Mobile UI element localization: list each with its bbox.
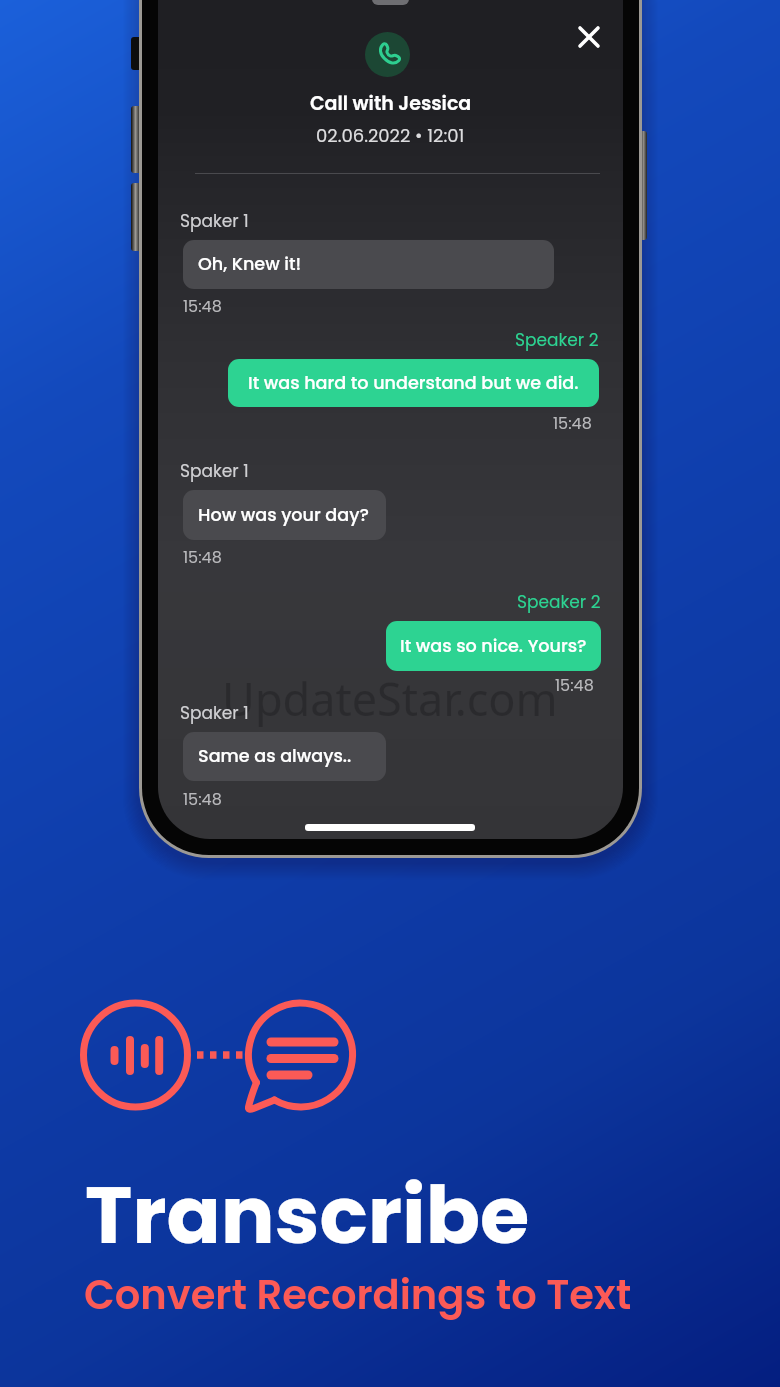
staticText: Spaker 1 <box>180 209 249 233</box>
staticText: Call with Jessica <box>310 90 472 117</box>
staticText: Convert Recordings to Text <box>84 1267 632 1323</box>
button[interactable]: Oh, Knew it! <box>183 240 554 289</box>
button[interactable]: How was your day? <box>183 490 386 540</box>
staticText: It was so nice. Yours? <box>400 634 587 659</box>
staticText: Transcribe <box>85 1159 530 1271</box>
staticText: 15:48 <box>183 546 222 568</box>
staticText: UpdateStar.com <box>222 668 558 729</box>
staticText: Oh, Knew it! <box>198 252 302 277</box>
staticText: It was hard to understand but we did. <box>248 371 579 396</box>
button[interactable]: It was hard to understand but we did. <box>228 359 599 407</box>
button[interactable]: Close <box>567 15 611 59</box>
button[interactable]: Same as always.. <box>183 732 386 781</box>
button[interactable]: It was so nice. Yours? <box>386 621 601 671</box>
staticText: Speaker 2 <box>517 590 601 614</box>
staticText: Spaker 1 <box>180 701 249 725</box>
staticText: How was your day? <box>198 503 369 528</box>
staticText: Speaker 2 <box>515 328 599 352</box>
staticText: Spaker 1 <box>180 459 249 483</box>
staticText: 15:48 <box>183 295 222 317</box>
staticText: 02.06.2022 • 12:01 <box>316 123 465 148</box>
staticText: 15:48 <box>553 412 592 434</box>
staticText: Same as always.. <box>198 744 352 769</box>
staticText: 15:48 <box>555 674 594 696</box>
staticText: 15:48 <box>183 788 222 810</box>
